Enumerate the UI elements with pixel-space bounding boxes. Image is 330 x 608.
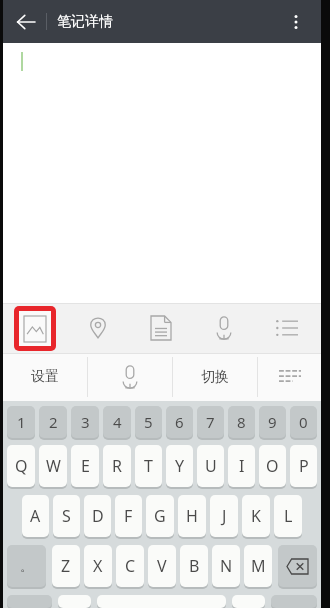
- staticText: 5: [144, 412, 153, 432]
- staticText: 0: [299, 412, 308, 432]
- button[interactable]: [97, 595, 226, 608]
- staticText: 9: [268, 412, 277, 432]
- button[interactable]: [232, 595, 265, 608]
- staticText: 设置: [31, 368, 59, 386]
- staticText: 4: [113, 412, 122, 432]
- staticText: S: [62, 505, 71, 527]
- staticText: P: [299, 455, 309, 477]
- button[interactable]: [58, 595, 91, 608]
- staticText: 7: [206, 412, 215, 432]
- button[interactable]: X: [84, 545, 112, 587]
- button[interactable]: Voice input: [88, 353, 172, 401]
- button[interactable]: Checklist: [255, 303, 318, 353]
- button[interactable]: D: [84, 495, 111, 537]
- staticText: U: [205, 455, 217, 477]
- button[interactable]: Insert image: [3, 303, 66, 353]
- button[interactable]: Z: [52, 545, 80, 587]
- button[interactable]: 0: [290, 406, 317, 438]
- button[interactable]: G: [146, 495, 174, 537]
- button[interactable]: T: [135, 445, 162, 487]
- button[interactable]: N: [212, 545, 240, 587]
- staticText: 笔记详情: [57, 13, 113, 31]
- staticText: 。: [20, 558, 33, 574]
- staticText: J: [222, 505, 227, 527]
- button[interactable]: Back: [9, 5, 43, 39]
- button[interactable]: 4: [103, 406, 131, 438]
- staticText: B: [189, 555, 200, 577]
- staticText: 3: [81, 412, 90, 432]
- staticText: R: [112, 455, 122, 477]
- button[interactable]: U: [197, 445, 224, 487]
- button[interactable]: B: [180, 545, 208, 587]
- button[interactable]: Insert location: [66, 303, 129, 353]
- button[interactable]: S: [53, 495, 80, 537]
- button[interactable]: 1: [7, 406, 35, 438]
- staticText: K: [251, 505, 261, 527]
- button[interactable]: P: [290, 445, 317, 487]
- staticText: H: [186, 505, 198, 527]
- staticText: M: [251, 555, 266, 577]
- button[interactable]: O: [259, 445, 286, 487]
- button[interactable]: 。: [7, 545, 46, 587]
- staticText: N: [220, 555, 233, 577]
- button[interactable]: H: [178, 495, 206, 537]
- button[interactable]: More options: [279, 5, 313, 39]
- staticText: Q: [15, 455, 28, 477]
- button[interactable]: W: [39, 445, 67, 487]
- staticText: 2: [49, 412, 58, 432]
- button[interactable]: Insert document: [129, 303, 192, 353]
- button[interactable]: V: [148, 545, 176, 587]
- button[interactable]: 6: [166, 406, 193, 438]
- button[interactable]: E: [71, 445, 99, 487]
- button[interactable]: 2: [39, 406, 67, 438]
- button[interactable]: R: [103, 445, 131, 487]
- button[interactable]: L: [274, 495, 302, 537]
- staticText: X: [93, 555, 103, 577]
- staticText: A: [30, 505, 41, 527]
- staticText: 切换: [201, 368, 229, 386]
- button[interactable]: M: [244, 545, 272, 587]
- button[interactable]: 3: [71, 406, 99, 438]
- staticText: Z: [61, 555, 71, 577]
- staticText: 6: [175, 412, 184, 432]
- button[interactable]: 设置: [3, 353, 87, 401]
- button[interactable]: 9: [259, 406, 286, 438]
- button[interactable]: C: [116, 545, 144, 587]
- button[interactable]: 切换: [173, 353, 257, 401]
- staticText: I: [239, 455, 245, 477]
- button[interactable]: Voice input: [192, 303, 255, 353]
- staticText: L: [284, 505, 293, 527]
- button[interactable]: Backspace: [278, 545, 317, 587]
- button[interactable]: K: [242, 495, 270, 537]
- staticText: W: [46, 455, 61, 477]
- button[interactable]: Y: [166, 445, 193, 487]
- staticText: O: [266, 455, 279, 477]
- staticText: E: [81, 455, 90, 477]
- staticText: F: [124, 505, 133, 527]
- staticText: T: [144, 455, 153, 477]
- staticText: D: [92, 505, 104, 527]
- button[interactable]: F: [115, 495, 142, 537]
- button[interactable]: Handwriting: [258, 353, 321, 401]
- button[interactable]: 8: [228, 406, 255, 438]
- staticText: 1: [17, 412, 26, 432]
- button[interactable]: Q: [7, 445, 35, 487]
- button[interactable]: 7: [197, 406, 224, 438]
- button[interactable]: I: [228, 445, 255, 487]
- staticText: V: [157, 555, 167, 577]
- staticText: 8: [237, 412, 246, 432]
- staticText: C: [125, 555, 136, 577]
- button[interactable]: J: [210, 495, 238, 537]
- staticText: G: [154, 505, 166, 527]
- button[interactable]: 5: [135, 406, 162, 438]
- button[interactable]: A: [22, 495, 49, 537]
- staticText: Y: [175, 455, 185, 477]
